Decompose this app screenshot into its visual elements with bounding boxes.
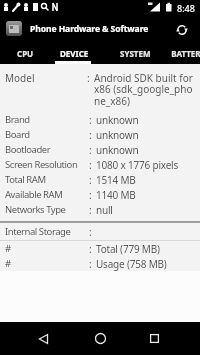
button[interactable]: Bootloader [0, 142, 200, 157]
staticText: 1514 MB [96, 173, 136, 187]
button[interactable]: Networks Type [0, 202, 200, 217]
button[interactable]: Board [0, 127, 200, 142]
staticText: Internal Storage [5, 225, 89, 238]
staticText: : [89, 128, 96, 142]
staticText: null [96, 203, 113, 217]
staticText: : [89, 158, 96, 172]
staticText: Usage (758 MB) [96, 257, 167, 271]
staticText: 1140 MB [96, 188, 136, 202]
button[interactable]: Brand [0, 112, 200, 127]
staticText: Bootloader [5, 143, 89, 156]
button[interactable]: # [0, 241, 200, 256]
staticText: : [89, 173, 96, 187]
staticText: Total (779 MB) [96, 242, 160, 256]
button[interactable]: Model [0, 64, 200, 112]
staticText: CPU [17, 48, 34, 59]
staticText: BATTERY [167, 48, 200, 59]
button[interactable]: # [0, 256, 200, 271]
staticText: Available RAM [5, 188, 89, 201]
staticText: : [89, 143, 96, 157]
staticText: 1080 x 1776 pixels [96, 158, 179, 172]
button[interactable]: BATTERY [167, 42, 200, 64]
staticText: unknown [96, 113, 139, 127]
staticText: Screen Resolution [5, 158, 89, 171]
staticText: DEVICE [60, 48, 89, 59]
staticText: # [5, 242, 89, 255]
staticText: : [89, 242, 96, 256]
staticText: 8:48 [177, 2, 195, 14]
staticText: unknown [96, 128, 139, 142]
staticText: unknown [96, 143, 139, 157]
staticText: : [89, 188, 96, 202]
button[interactable]: DEVICE [50, 42, 98, 64]
button[interactable]: Internal Storage [0, 223, 200, 240]
button[interactable]: Screen Resolution [0, 157, 200, 172]
staticText: : [89, 113, 96, 127]
button[interactable]: Total RAM [0, 172, 200, 187]
staticText: Board [5, 128, 89, 141]
staticText: SYSTEM [120, 48, 151, 59]
button[interactable] [172, 22, 192, 38]
staticText: Android SDK built for x86 (sdk_google_ph… [94, 71, 193, 108]
button[interactable] [30, 322, 58, 355]
staticText: Networks Type [5, 203, 89, 216]
staticText: Model [5, 71, 87, 85]
button[interactable] [140, 322, 168, 355]
button[interactable]: SYSTEM [103, 42, 167, 64]
button[interactable] [86, 322, 114, 355]
staticText: # [5, 257, 89, 270]
staticText: Brand [5, 113, 89, 126]
staticText: : [87, 71, 94, 85]
staticText: Total RAM [5, 173, 89, 186]
button[interactable]: CPU [0, 42, 50, 64]
staticText: : [89, 257, 96, 271]
staticText: : [89, 203, 96, 217]
staticText: Phone Hardware & Software [30, 23, 149, 35]
staticText: : [89, 225, 96, 239]
button[interactable]: Available RAM [0, 187, 200, 202]
